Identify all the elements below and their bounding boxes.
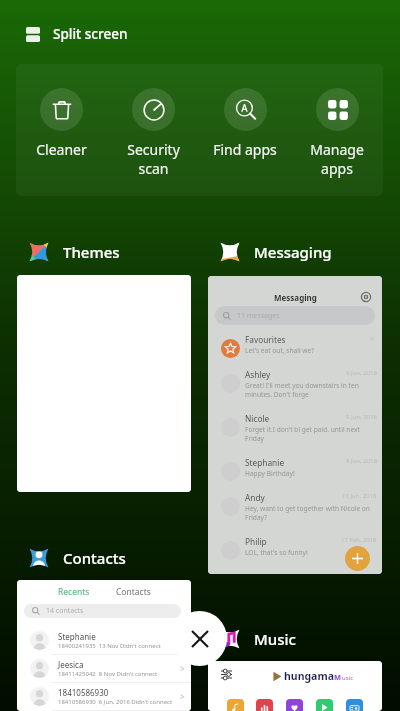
staticText: Messaging [274,292,317,303]
staticText: Recents [58,586,90,598]
staticText: Forget it.I don't bl get paid. until nex… [245,425,360,443]
staticText: 18400241935 13 Nov Didn't connect [58,642,161,650]
button[interactable]: Messaging [208,276,382,574]
staticText: 11 messages [237,311,280,321]
button[interactable]: Manage apps [291,88,383,178]
button[interactable]: Close recents [172,611,227,666]
staticText: Manage apps [310,140,364,178]
staticText: LOL, that's so funny! [245,548,308,557]
button[interactable]: Ashley [208,362,382,406]
staticText: 9 Jun, 2016 [346,369,377,377]
staticText: Messaging [254,242,332,262]
staticText: hungama [284,669,334,683]
button[interactable] [286,699,303,711]
staticText: usic [342,674,354,682]
staticText: M [334,672,342,682]
staticText: Ashley [245,369,271,380]
button[interactable]: Find apps [199,88,291,159]
button[interactable]: Contacts [114,586,153,598]
staticText: 17 Feb, 2016 [341,536,377,544]
staticText: 18410586930 6 Jun, 2016 Didn't connect [58,698,173,706]
button[interactable]: Favourites [208,327,382,362]
button[interactable]: Themes [27,240,120,264]
button[interactable]: Contacts [27,546,126,570]
staticText: Nicole [245,413,270,424]
button[interactable] [316,699,333,711]
button[interactable] [346,699,363,711]
staticText: 18411425042 8 Nov Didn't connect [58,670,158,678]
staticText: Stephanie [58,631,96,642]
staticText: Let's eat out, shall we? [245,346,315,355]
button[interactable]: Recents [56,586,92,598]
button[interactable]: Recents [17,580,191,711]
staticText: Security scan [127,140,180,178]
staticText: Contacts [63,548,126,568]
button[interactable]: hungama [208,661,382,711]
staticText: 9 Jun, 2016 [346,413,377,421]
staticText: > [180,691,185,702]
staticText: Andy [245,492,265,503]
button[interactable]: Cleaner [16,88,107,159]
button[interactable] [17,275,191,492]
staticText: Split screen [53,25,128,43]
button[interactable] [256,699,273,711]
button[interactable]: Philip [208,529,382,564]
button[interactable]: Split screen [26,25,128,43]
staticText: Jeesica [58,659,84,670]
button[interactable]: Music [218,627,296,651]
staticText: Contacts [116,586,151,598]
staticText: Hey, want to get together with Nicole on… [245,504,370,522]
staticText: Music [254,629,296,649]
button[interactable]: Messaging [218,240,332,264]
staticText: Themes [63,242,120,262]
staticText: Great! I'll meet you downstairs in ten m… [245,381,359,399]
staticText: Philip [245,536,267,547]
button[interactable]: Andy [208,485,382,529]
staticText: Happy Birthday! [245,469,295,478]
staticText: 18410586930 [58,687,109,698]
button[interactable]: Nicole [208,406,382,450]
staticText: Cleaner [36,140,87,159]
staticText: 14 contacts [46,606,84,616]
button[interactable]: Security scan [107,88,199,178]
staticText: Stephanie [245,457,285,468]
button[interactable]: New message [345,546,370,571]
button[interactable] [227,699,244,711]
staticText: > [180,663,185,674]
staticText: 10 Jun, 2016 [342,492,377,500]
staticText: Favourites [245,334,286,345]
staticText: Find apps [213,140,277,159]
staticText: > [370,334,375,344]
button[interactable]: Stephanie [208,450,382,485]
staticText: 8 Jun, 2016 [346,457,377,465]
